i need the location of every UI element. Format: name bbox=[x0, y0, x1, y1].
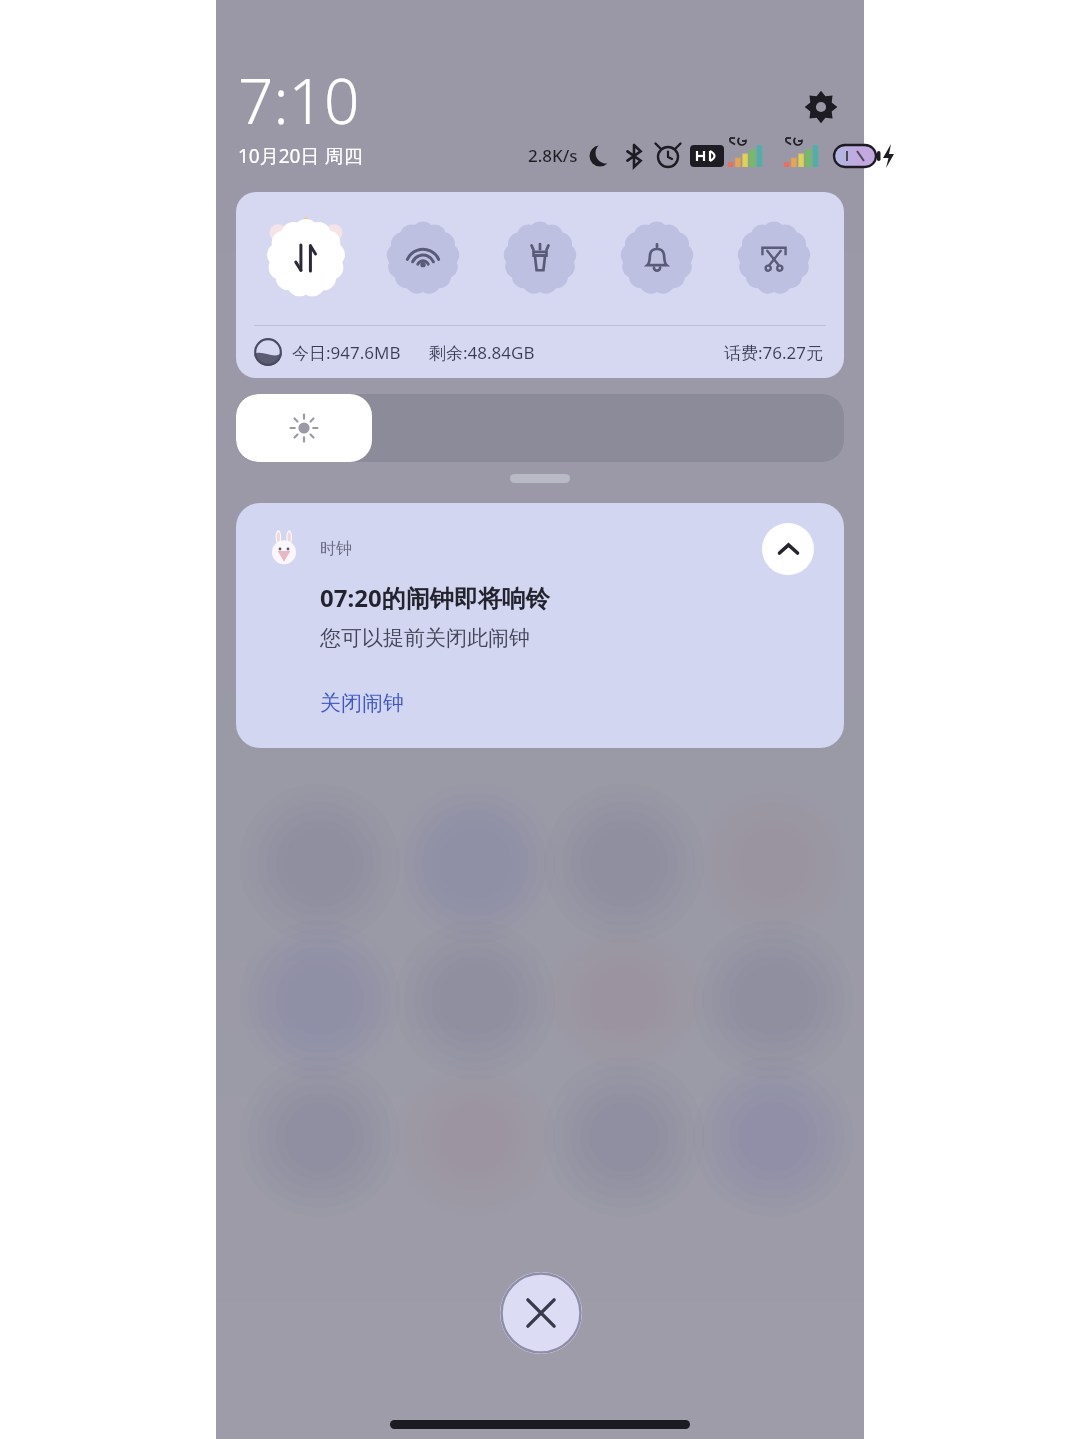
staticText: 今日:947.6MB bbox=[292, 341, 401, 364]
staticText: 时钟 bbox=[320, 539, 352, 559]
button[interactable]: Settings bbox=[794, 80, 848, 134]
button[interactable]: Mobile data bbox=[259, 211, 353, 305]
button[interactable]: Collapse notification bbox=[762, 523, 814, 575]
staticText: 剩余:48.84GB bbox=[429, 341, 535, 364]
staticText: 7:10 bbox=[238, 58, 360, 142]
staticText: 10月20日 周四 bbox=[238, 143, 363, 169]
staticText: 07:20的闹钟即将响铃 bbox=[320, 581, 550, 614]
button[interactable]: Brightness bbox=[236, 394, 844, 462]
button[interactable]: 关闭闹钟 bbox=[308, 679, 416, 727]
button[interactable]: Wi-Fi bbox=[376, 211, 470, 305]
button[interactable]: Screenshot bbox=[727, 211, 821, 305]
button[interactable]: 今日:947.6MB bbox=[236, 326, 844, 378]
button[interactable]: Close bbox=[500, 1272, 582, 1354]
staticText: 话费:76.27元 bbox=[724, 341, 824, 364]
staticText: 关闭闹钟 bbox=[320, 690, 404, 716]
staticText: 2.8K/s bbox=[528, 144, 578, 167]
button[interactable]: 时钟 bbox=[236, 503, 844, 748]
button[interactable]: Flashlight bbox=[493, 211, 587, 305]
button[interactable]: Ringer bbox=[610, 211, 704, 305]
staticText: 您可以提前关闭此闹钟 bbox=[320, 625, 530, 651]
